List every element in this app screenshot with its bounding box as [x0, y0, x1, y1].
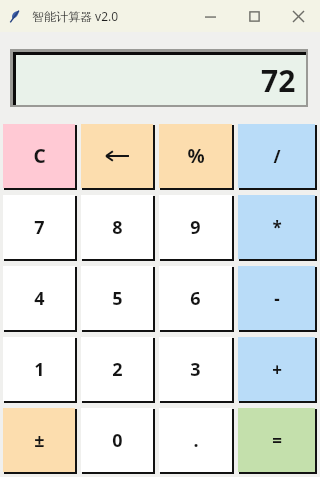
staticText: 1 — [34, 357, 45, 382]
staticText: * — [272, 216, 282, 239]
button[interactable]: 8 — [81, 195, 153, 259]
staticText: 9 — [190, 215, 201, 240]
button[interactable]: % — [159, 124, 232, 188]
button[interactable]: 3 — [159, 337, 232, 401]
button[interactable]: 7 — [3, 195, 75, 259]
staticText: 7 — [34, 215, 45, 240]
staticText: 3 — [190, 357, 201, 382]
staticText: - — [274, 287, 280, 310]
button[interactable]: . — [159, 408, 232, 472]
staticText: ± — [34, 428, 45, 453]
button[interactable]: Backspace — [81, 124, 153, 188]
button[interactable]: 2 — [81, 337, 153, 401]
staticText: 6 — [190, 286, 201, 311]
button[interactable]: 9 — [159, 195, 232, 259]
staticText: 智能计算器 v2.0 — [32, 8, 119, 24]
button[interactable]: Minimize — [188, 0, 232, 32]
button[interactable]: ± — [3, 408, 75, 472]
button[interactable]: * — [238, 195, 315, 259]
button[interactable]: = — [238, 408, 315, 472]
button[interactable]: - — [238, 266, 315, 330]
staticText: % — [187, 143, 205, 169]
button[interactable]: 1 — [3, 337, 75, 401]
button[interactable]: C — [3, 124, 75, 188]
staticText: . — [193, 428, 199, 453]
staticText: 0 — [112, 428, 123, 453]
staticText: 5 — [112, 286, 123, 311]
button[interactable]: 5 — [81, 266, 153, 330]
staticText: / — [273, 145, 281, 168]
staticText: 2 — [112, 357, 123, 382]
staticText: 8 — [112, 215, 123, 240]
button[interactable]: 6 — [159, 266, 232, 330]
button[interactable]: Maximize — [232, 0, 276, 32]
button[interactable]: Close — [276, 0, 320, 32]
button[interactable]: + — [238, 337, 315, 401]
button[interactable]: 0 — [81, 408, 153, 472]
staticText: 72 — [261, 60, 296, 101]
button[interactable]: 4 — [3, 266, 75, 330]
button[interactable]: / — [238, 124, 315, 188]
staticText: = — [272, 429, 282, 452]
staticText: + — [272, 358, 282, 381]
staticText: C — [33, 143, 46, 169]
staticText: 4 — [34, 286, 45, 311]
